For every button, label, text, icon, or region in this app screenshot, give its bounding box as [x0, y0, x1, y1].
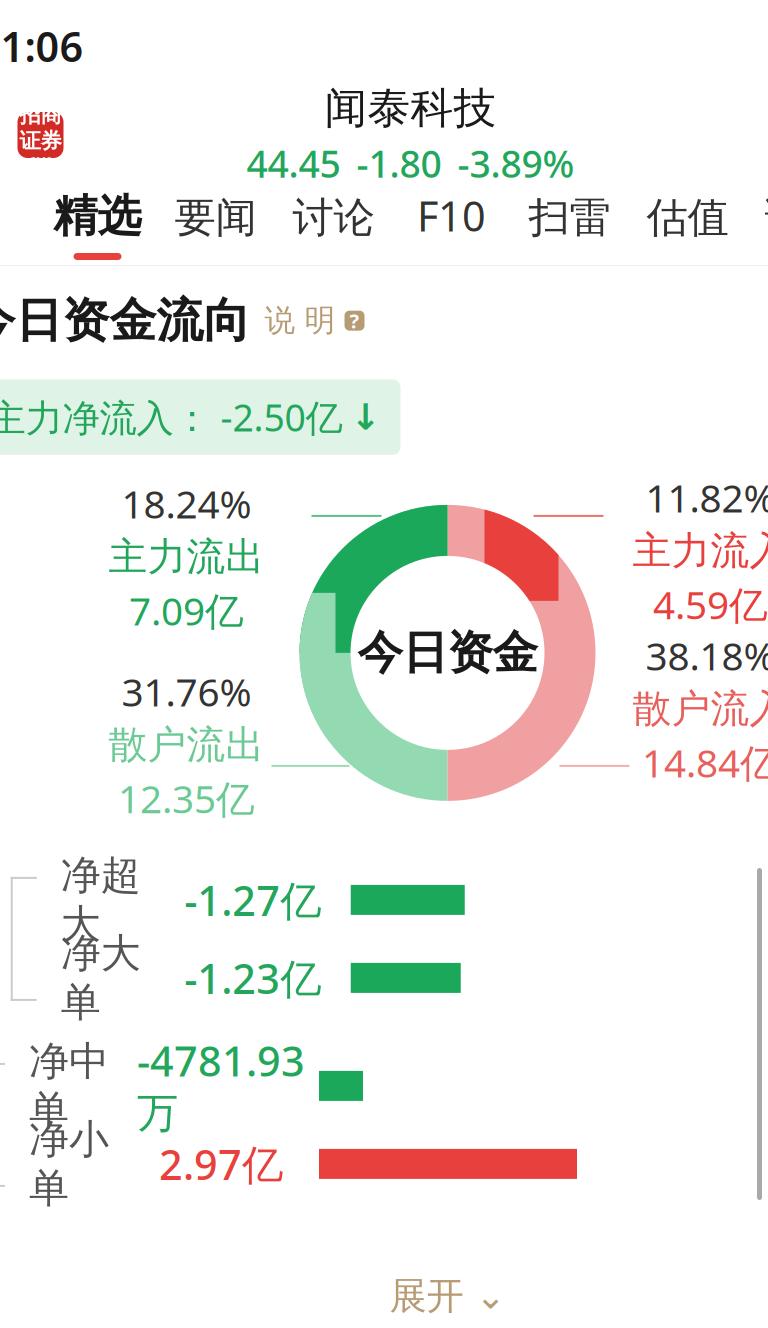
staticText: 38.18%	[645, 630, 768, 681]
button[interactable]: 要闻	[156, 178, 274, 266]
staticText: 净中单	[29, 1037, 109, 1135]
button[interactable]: F10	[392, 178, 510, 266]
button[interactable]: 扫雷	[510, 178, 628, 266]
staticText: -1.27亿	[184, 872, 321, 927]
staticText: 4.59亿	[653, 578, 768, 630]
staticText: CMS	[29, 154, 52, 168]
staticText: 18.24%	[121, 478, 251, 529]
staticText: 主力净流入： -2.50亿	[0, 392, 342, 442]
staticText: 招商	[19, 102, 61, 128]
staticText: 讨论	[292, 192, 374, 243]
staticText: 精选	[53, 189, 141, 243]
staticText: 11.82%	[645, 472, 768, 523]
staticText: 诊断	[764, 192, 768, 243]
staticText: 散户流入	[632, 685, 768, 733]
staticText: 要闻	[174, 192, 256, 243]
staticText: 闻泰科技	[324, 82, 496, 134]
staticText: -1.23亿	[184, 950, 321, 1005]
staticText: 主力流出	[108, 533, 264, 581]
staticText: 证券	[19, 128, 61, 154]
staticText: 估值	[646, 192, 728, 243]
staticText: 净大单	[61, 929, 141, 1027]
staticText: 今日资金流向	[0, 292, 250, 349]
staticText: 今日资金	[357, 625, 537, 681]
button[interactable]: 估值	[628, 178, 746, 266]
button[interactable]: 诊断	[746, 178, 768, 266]
staticText: -1.80	[356, 138, 441, 188]
staticText: 展开	[389, 1273, 463, 1319]
button[interactable]: 说 明	[250, 302, 365, 339]
staticText: F10	[417, 188, 486, 243]
button[interactable]: 招商证券	[2, 111, 64, 159]
staticText: ?	[349, 307, 359, 334]
staticText: ⌄	[475, 1276, 505, 1316]
staticText: -3.89%	[457, 138, 574, 188]
staticText: 2.97亿	[159, 1136, 283, 1191]
staticText: 7.09亿	[129, 585, 244, 636]
staticText: 说 明	[264, 302, 335, 339]
button[interactable]: 讨论	[274, 178, 392, 266]
staticText: 31.76%	[121, 666, 251, 717]
staticText: 12.35亿	[118, 772, 255, 824]
staticText: 扫雷	[528, 192, 610, 243]
staticText: ↓	[350, 397, 380, 438]
staticText: -4781.93万	[137, 1033, 305, 1139]
staticText: 11:06	[0, 19, 83, 73]
staticText: 散户流出	[108, 721, 264, 769]
staticText: 主力流入	[632, 527, 768, 575]
staticText: 44.45	[246, 138, 340, 188]
button[interactable]: 展开	[0, 1264, 768, 1328]
staticText: 14.84亿	[642, 737, 768, 788]
button[interactable]: 精选	[38, 178, 156, 266]
staticText: 净小单	[29, 1115, 109, 1213]
staticText: 净超大	[61, 851, 141, 949]
